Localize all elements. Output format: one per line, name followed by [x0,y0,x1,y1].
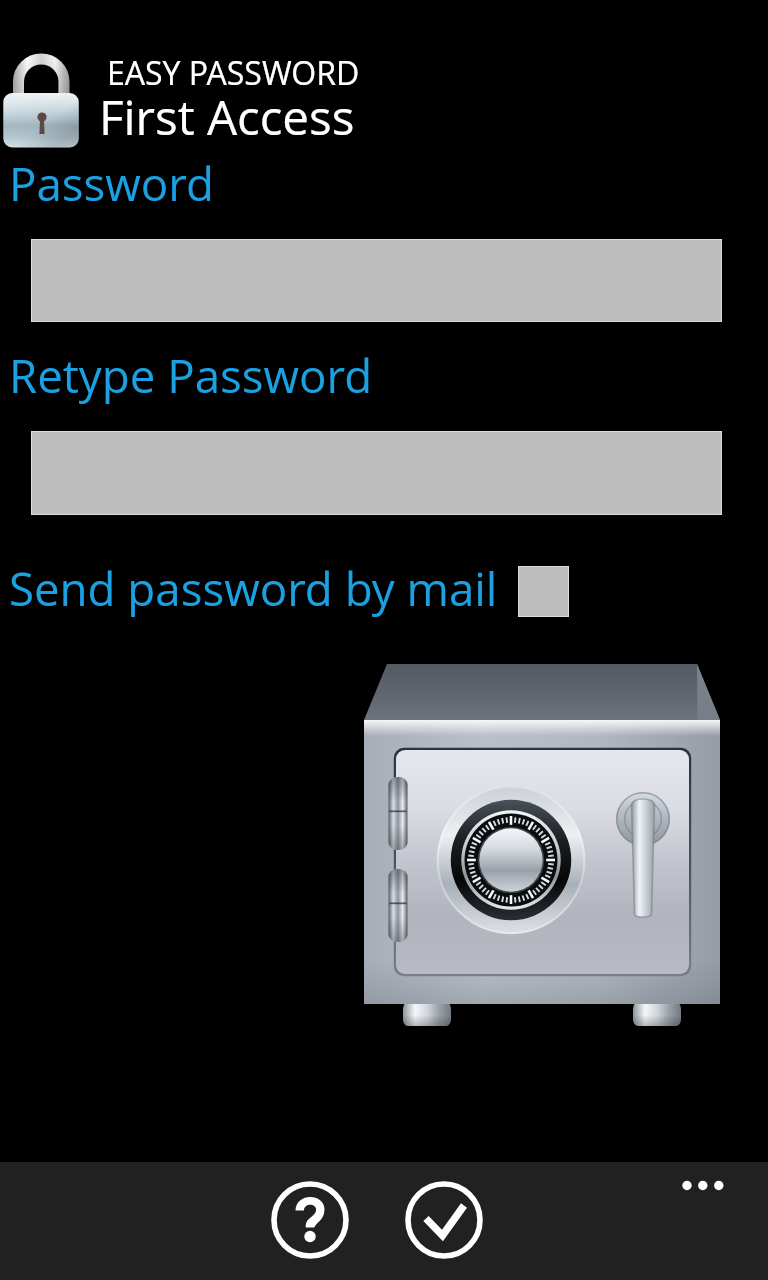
button[interactable] [31,239,722,322]
staticText: Retype Password [9,344,373,406]
button[interactable]: Confirm [406,1182,482,1258]
button[interactable] [31,431,722,515]
button[interactable]: Send password by mail [4,552,574,630]
staticText: EASY PASSWORD [107,51,360,95]
staticText: Password [9,152,214,214]
button[interactable]: Help [272,1182,348,1258]
staticText: First Access [99,84,355,149]
staticText: Send password by mail [9,557,498,619]
button[interactable]: More options [660,1162,768,1214]
